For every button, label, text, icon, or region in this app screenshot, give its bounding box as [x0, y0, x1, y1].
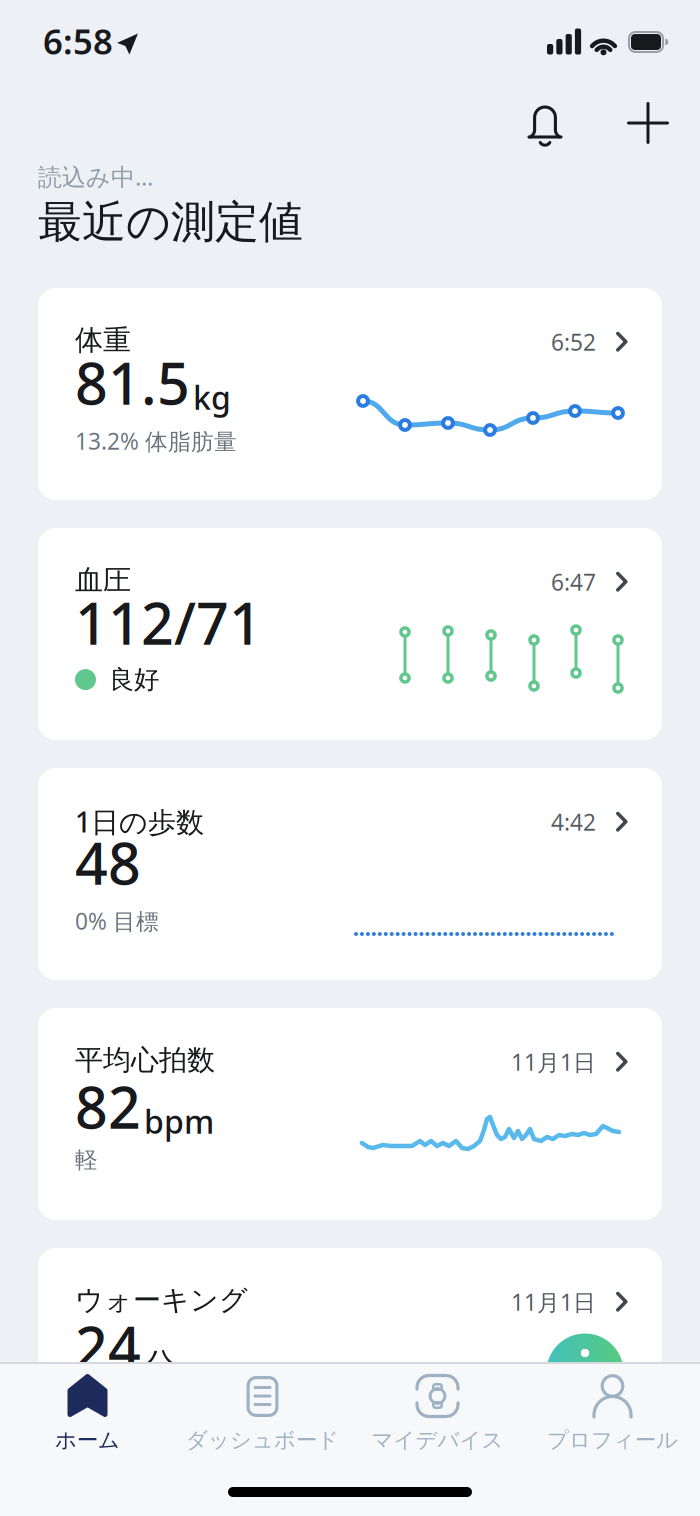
- staticText: ダッシュボード: [186, 1427, 339, 1453]
- staticText: 81.5: [75, 344, 190, 421]
- button[interactable]: 血圧: [38, 528, 662, 740]
- staticText: 最近の測定値: [38, 195, 303, 249]
- staticText: 良好: [109, 664, 159, 695]
- staticText: 6:47: [551, 567, 596, 597]
- staticText: 分: [144, 1345, 176, 1385]
- staticText: 血圧: [75, 563, 131, 597]
- staticText: ウォーキング: [75, 1283, 248, 1317]
- staticText: 0% 目標: [75, 906, 159, 936]
- staticText: 軽: [75, 1146, 98, 1174]
- button[interactable]: 体重: [38, 288, 662, 500]
- staticText: 24: [75, 1308, 141, 1385]
- button[interactable]: マイデバイス: [350, 1374, 525, 1453]
- staticText: マイデバイス: [371, 1427, 503, 1453]
- staticText: 112/71: [75, 584, 262, 661]
- staticText: 48: [75, 824, 141, 901]
- button[interactable]: ダッシュボード: [175, 1374, 350, 1453]
- staticText: プロフィール: [547, 1427, 678, 1453]
- staticText: 6:58: [43, 18, 113, 64]
- staticText: 6:52: [551, 327, 596, 357]
- button[interactable]: ホーム: [0, 1374, 175, 1453]
- button[interactable]: 1日の歩数: [38, 768, 662, 980]
- staticText: 4:42: [551, 807, 596, 837]
- staticText: 11月1日: [511, 1287, 596, 1317]
- staticText: 13.2% 体脂肪量: [75, 426, 237, 456]
- button[interactable]: プロフィール: [525, 1374, 700, 1453]
- staticText: 82: [75, 1068, 141, 1145]
- button[interactable]: 平均心拍数: [38, 1008, 662, 1220]
- button[interactable]: ウォーキング: [38, 1248, 662, 1460]
- button[interactable]: [626, 101, 670, 145]
- staticText: kg: [193, 376, 231, 419]
- staticText: 読込み中...: [38, 160, 153, 192]
- button[interactable]: [523, 102, 567, 146]
- staticText: ホーム: [55, 1427, 120, 1453]
- staticText: 体重: [75, 323, 131, 357]
- staticText: 1日の歩数: [75, 803, 204, 840]
- staticText: 11月1日: [511, 1047, 596, 1077]
- staticText: 平均心拍数: [75, 1043, 215, 1077]
- staticText: bpm: [144, 1100, 214, 1143]
